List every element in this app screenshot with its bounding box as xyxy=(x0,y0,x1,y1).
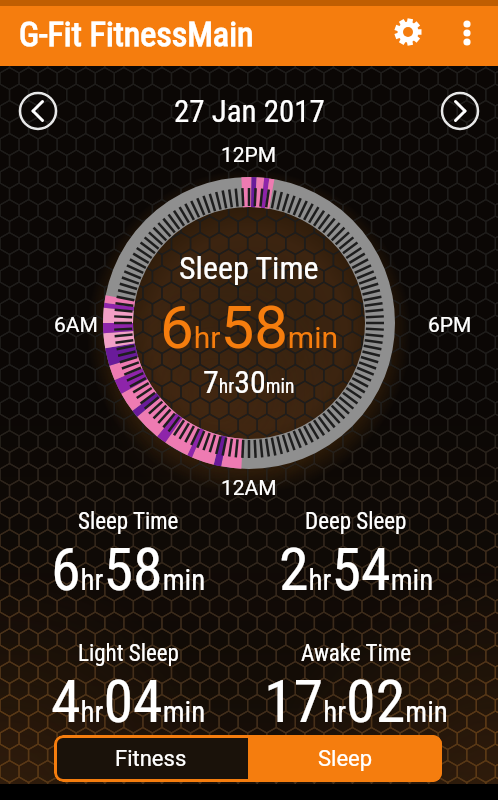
button[interactable] xyxy=(388,12,428,52)
button[interactable]: Sleep xyxy=(248,735,442,782)
staticText: 4hr04min xyxy=(51,666,206,736)
staticText: 6PM xyxy=(428,313,472,338)
staticText: 17hr02min xyxy=(264,666,448,736)
staticText: 6AM xyxy=(54,313,98,338)
staticText: 7hr30min xyxy=(203,363,295,401)
staticText: 6hr58min xyxy=(51,534,206,604)
staticText: 6hr58min xyxy=(160,292,339,362)
staticText: 12AM xyxy=(221,476,277,501)
staticText: Awake Time xyxy=(301,640,411,667)
staticText: 2hr54min xyxy=(279,534,434,604)
button[interactable]: Fitness xyxy=(54,735,248,782)
button[interactable] xyxy=(440,91,480,131)
staticText: 12PM xyxy=(221,143,277,168)
staticText: Sleep xyxy=(318,746,373,772)
staticText: Sleep Time xyxy=(78,508,179,535)
button[interactable] xyxy=(18,91,58,131)
staticText: 27 Jan 2017 xyxy=(174,93,325,129)
staticText: G-Fit FitnessMain xyxy=(19,14,254,54)
button[interactable] xyxy=(452,18,482,48)
staticText: Sleep Time xyxy=(179,249,319,287)
staticText: Fitness xyxy=(115,746,187,772)
staticText: Light Sleep xyxy=(78,640,179,667)
staticText: Deep Sleep xyxy=(305,508,407,535)
